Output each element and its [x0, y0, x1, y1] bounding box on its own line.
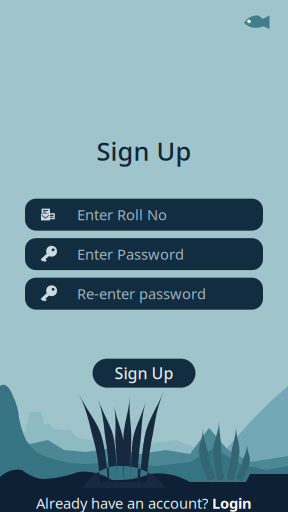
button[interactable]: Sign Up — [92, 359, 195, 388]
button[interactable]: Enter Password — [25, 238, 263, 270]
staticText: Sign Up — [114, 362, 173, 384]
staticText: Enter Roll No — [77, 205, 167, 224]
button[interactable]: Enter Roll No — [25, 199, 263, 231]
staticText: Already have an account? — [36, 493, 208, 512]
staticText: Enter Password — [77, 244, 184, 264]
button[interactable]: Re-enter password — [25, 278, 263, 310]
staticText: Sign Up — [96, 134, 191, 168]
button[interactable]: Already have an account? — [36, 495, 252, 512]
staticText: Re-enter password — [77, 284, 206, 303]
staticText: Login — [212, 493, 252, 512]
